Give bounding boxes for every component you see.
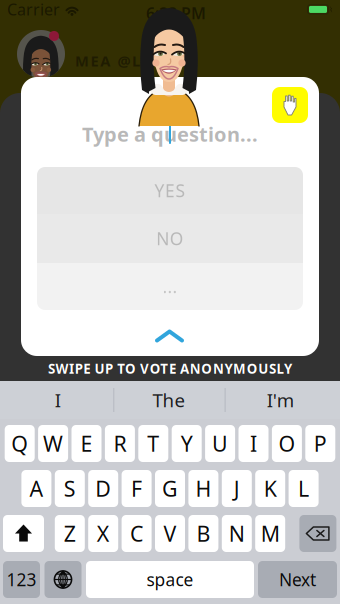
staticText: I'm	[267, 388, 294, 412]
staticText: YES	[154, 179, 186, 202]
button[interactable]: P	[305, 425, 335, 462]
staticText: C	[130, 519, 143, 548]
button[interactable]: Delete	[299, 515, 336, 552]
staticText: S	[64, 474, 76, 503]
button[interactable]: R	[105, 425, 135, 462]
button[interactable]: Z	[55, 515, 85, 552]
staticText: X	[97, 519, 110, 548]
staticText: space	[146, 568, 193, 591]
button[interactable]: Swipe up	[155, 329, 184, 343]
staticText: I	[250, 429, 257, 458]
button[interactable]: Shift	[3, 515, 44, 552]
button[interactable]: SWIPE UP TO VOTE ANONYMOUSLY	[0, 356, 340, 381]
staticText: Z	[64, 519, 76, 548]
button[interactable]: M	[255, 515, 285, 552]
staticText: U	[212, 429, 228, 458]
button[interactable]: Profile	[17, 30, 65, 78]
staticText: Next	[279, 568, 316, 591]
button[interactable]: S	[55, 470, 85, 507]
button[interactable]: J	[222, 470, 252, 507]
staticText: H	[195, 474, 211, 503]
staticText: 6:23 PM	[146, 2, 206, 24]
button[interactable]: Raise hand	[272, 87, 308, 123]
button[interactable]: O	[272, 425, 302, 462]
button[interactable]: The	[113, 381, 225, 419]
button[interactable]: B	[188, 515, 218, 552]
button[interactable]: C	[122, 515, 152, 552]
button[interactable]: I'm	[225, 381, 336, 419]
button[interactable]: space	[86, 561, 254, 598]
button[interactable]: X	[88, 515, 118, 552]
staticText: MEA @LMK	[75, 51, 167, 70]
button[interactable]: V	[155, 515, 185, 552]
staticText: B	[196, 519, 210, 548]
button[interactable]: Next	[258, 561, 337, 598]
button[interactable]: N	[222, 515, 252, 552]
staticText: 123	[6, 568, 36, 591]
staticText: Carrier	[7, 0, 60, 20]
button[interactable]: NO	[37, 214, 303, 263]
staticText: K	[264, 474, 277, 503]
staticText: Y	[181, 429, 193, 458]
staticText: Q	[11, 429, 28, 458]
staticText: T	[147, 429, 159, 458]
button[interactable]: E	[71, 425, 101, 462]
button[interactable]: G	[155, 470, 185, 507]
staticText: N	[229, 519, 245, 548]
staticText: E	[80, 429, 92, 458]
button[interactable]: YES	[37, 167, 303, 214]
button[interactable]: Q	[5, 425, 35, 462]
button[interactable]: A	[21, 470, 51, 507]
staticText: P	[314, 429, 327, 458]
staticText: ...	[162, 275, 177, 298]
staticText: L	[298, 474, 309, 503]
staticText: I	[55, 388, 61, 412]
button[interactable]: T	[138, 425, 168, 462]
staticText: SWIPE UP TO VOTE ANONYMOUSLY	[48, 360, 292, 377]
staticText: M	[261, 519, 280, 548]
button[interactable]: L	[289, 470, 319, 507]
staticText: The	[152, 388, 185, 412]
button[interactable]: Change keyboard	[44, 561, 81, 598]
button[interactable]: W	[38, 425, 68, 462]
button[interactable]: F	[122, 470, 152, 507]
button[interactable]: U	[205, 425, 235, 462]
staticText: G	[162, 474, 178, 503]
button[interactable]: Y	[172, 425, 202, 462]
staticText: Type a question...	[82, 121, 258, 147]
staticText: F	[131, 474, 142, 503]
staticText: V	[163, 519, 176, 548]
staticText: NO	[156, 227, 184, 250]
button[interactable]: I	[238, 425, 268, 462]
button[interactable]: I	[2, 381, 113, 419]
staticText: J	[234, 474, 240, 503]
staticText: W	[43, 429, 63, 458]
staticText: R	[113, 429, 126, 458]
button[interactable]: K	[255, 470, 285, 507]
button[interactable]: 123	[3, 561, 40, 598]
button[interactable]: D	[88, 470, 118, 507]
staticText: O	[278, 429, 295, 458]
staticText: A	[29, 474, 43, 503]
button[interactable]: Type a question...	[37, 121, 303, 147]
button[interactable]: H	[188, 470, 218, 507]
staticText: D	[95, 474, 111, 503]
